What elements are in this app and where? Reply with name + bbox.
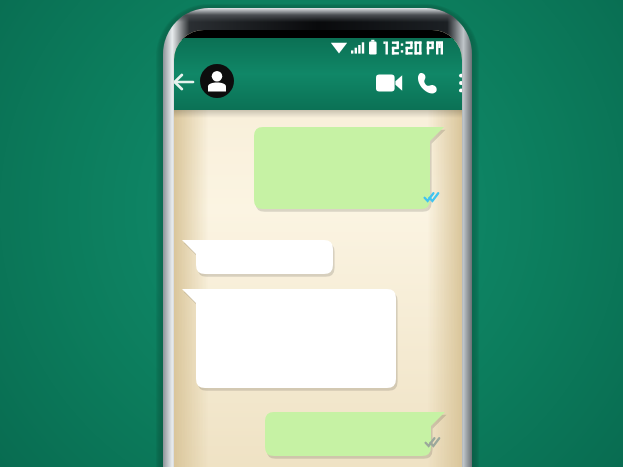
button[interactable]: Contact profile xyxy=(200,64,234,98)
button[interactable]: More options xyxy=(450,66,472,98)
button[interactable]: Video call xyxy=(373,66,405,98)
button[interactable] xyxy=(182,289,396,388)
button[interactable] xyxy=(182,240,333,274)
button[interactable]: Back xyxy=(170,66,200,96)
button[interactable]: Voice call xyxy=(413,66,443,98)
button[interactable] xyxy=(265,412,445,456)
button[interactable] xyxy=(254,127,444,209)
